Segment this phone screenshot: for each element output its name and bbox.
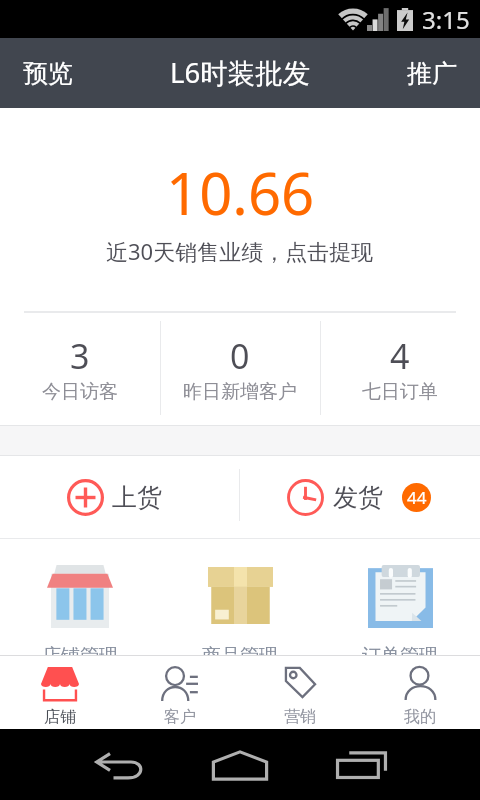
staticText: 推广 (407, 58, 457, 89)
staticText: 店铺管理 (42, 644, 118, 668)
staticText: 发货 (333, 482, 383, 513)
button[interactable]: 营销 (240, 656, 360, 729)
staticText: 0 (230, 333, 250, 379)
staticText: 10.66 (166, 153, 315, 232)
button[interactable]: 店铺管理 (0, 539, 160, 655)
staticText: 3:15 (422, 3, 470, 36)
staticText: 近30天销售业绩，点击提现 (106, 236, 374, 266)
staticText: 营销 (284, 707, 316, 727)
button[interactable]: 我的 (360, 656, 480, 729)
staticText: 订单管理 (362, 644, 438, 668)
staticText: 店铺 (44, 707, 76, 727)
button[interactable]: 推广 (384, 38, 480, 108)
button[interactable]: 4 (320, 313, 480, 425)
button[interactable]: Home (200, 735, 280, 795)
button[interactable]: 预览 (0, 38, 96, 108)
staticText: 我的 (404, 707, 436, 727)
button[interactable]: 10.66 (0, 108, 480, 311)
staticText: 商品管理 (202, 644, 278, 668)
button[interactable]: 店铺 (0, 656, 120, 729)
staticText: 4 (390, 333, 410, 379)
button[interactable]: 0 (160, 313, 320, 425)
button[interactable]: Recent apps (321, 735, 401, 795)
button[interactable]: 商品管理 (160, 539, 320, 655)
staticText: 昨日新增客户 (183, 380, 297, 404)
staticText: 客户 (164, 707, 196, 727)
button[interactable]: 订单管理 (320, 539, 480, 655)
button[interactable]: 客户 (120, 656, 240, 729)
staticText: 七日订单 (362, 380, 438, 404)
button[interactable]: 3 (0, 313, 160, 425)
staticText: 3 (70, 333, 90, 379)
button[interactable]: Back (80, 735, 160, 795)
staticText: 44 (407, 486, 427, 509)
button[interactable]: 上货 (0, 456, 240, 538)
staticText: 预览 (23, 58, 73, 89)
staticText: 今日访客 (42, 380, 118, 404)
staticText: 上货 (112, 482, 162, 513)
button[interactable]: 发货 (240, 456, 480, 538)
staticText: L6时装批发 (170, 54, 311, 92)
